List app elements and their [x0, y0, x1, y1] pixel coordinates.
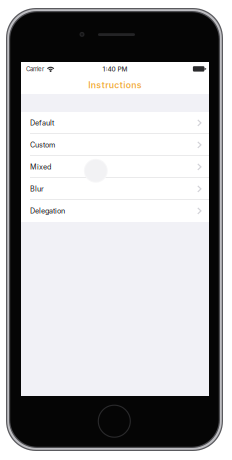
button[interactable]: Delegation: [21, 200, 209, 222]
button[interactable]: Default: [21, 112, 209, 134]
button[interactable]: Blur: [21, 178, 209, 200]
staticText: Mixed: [30, 163, 51, 171]
staticText: 1:40 PM: [102, 65, 127, 73]
staticText: Blur: [30, 185, 44, 193]
staticText: Custom: [30, 141, 55, 149]
staticText: Carrier: [26, 65, 44, 73]
staticText: Instructions: [88, 80, 142, 90]
button[interactable]: Mixed: [21, 156, 209, 178]
staticText: Delegation: [30, 207, 65, 215]
button[interactable]: Custom: [21, 134, 209, 156]
staticText: Default: [30, 119, 54, 127]
